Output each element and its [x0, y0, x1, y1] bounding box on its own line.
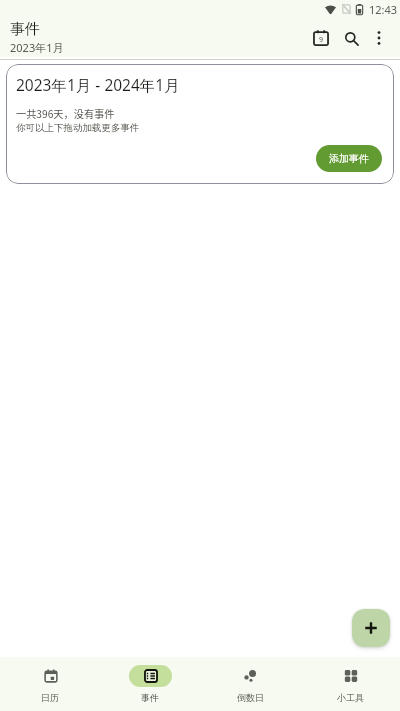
staticText: 2023年1月 [10, 40, 64, 55]
staticText: 添加事件 [329, 152, 369, 165]
button[interactable]: 日历 [0, 657, 100, 711]
staticText: 小工具 [337, 692, 364, 703]
staticText: 2023年1月 - 2024年1月 [16, 74, 180, 95]
button[interactable]: 添加事件 [316, 145, 382, 172]
button[interactable]: 倒数日 [200, 657, 300, 711]
staticText: 一共396天，没有事件 [16, 106, 115, 121]
staticText: 倒数日 [237, 692, 264, 703]
button[interactable]: 事件 [100, 657, 200, 711]
staticText: 9 [319, 35, 324, 45]
staticText: 12:43 [369, 2, 398, 17]
staticText: 事件 [10, 20, 40, 39]
button[interactable]: 小工具 [300, 657, 400, 711]
button[interactable]: Search [336, 20, 366, 56]
button[interactable]: Today [306, 20, 336, 56]
staticText: 事件 [141, 692, 159, 703]
staticText: 日历 [41, 692, 59, 703]
button[interactable]: More options [366, 20, 392, 56]
button[interactable]: Add event [352, 609, 390, 647]
staticText: 你可以上下拖动加载更多事件 [16, 122, 140, 134]
